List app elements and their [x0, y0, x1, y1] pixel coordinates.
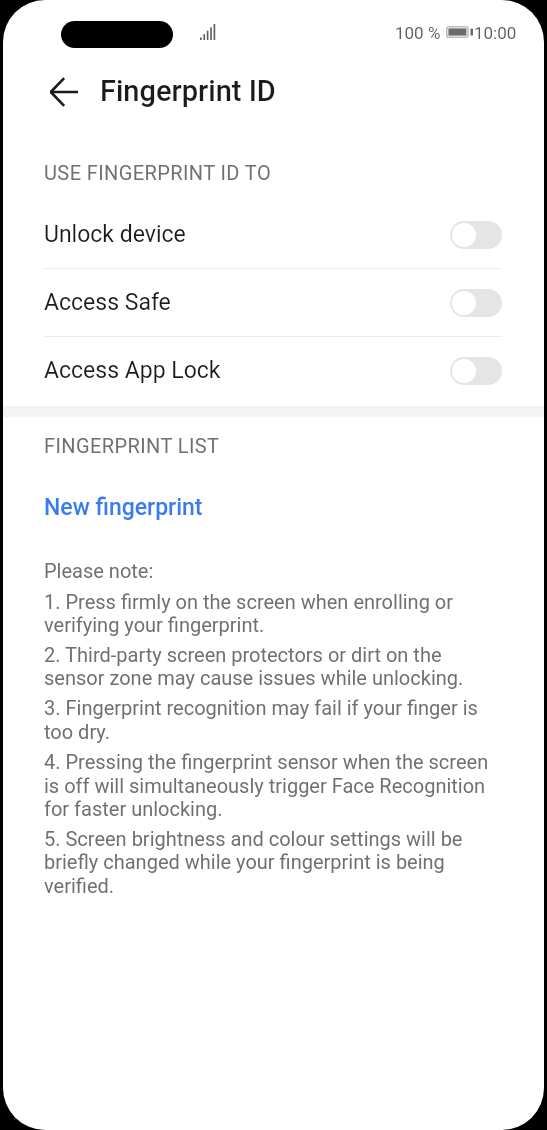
- staticText: 100 %: [395, 23, 441, 43]
- button[interactable]: Access App Lock: [3, 337, 544, 404]
- staticText: Access Safe: [44, 289, 450, 316]
- button[interactable]: Unlock device: [3, 201, 544, 268]
- staticText: verifying your fingerprint.: [44, 613, 265, 636]
- staticText: Please note:: [44, 559, 154, 582]
- staticText: USE FINGERPRINT ID TO: [44, 161, 272, 184]
- staticText: sensor zone may cause issues while unloc…: [44, 666, 464, 689]
- staticText: verified.: [44, 874, 115, 897]
- staticText: 1. Press firmly on the screen when enrol…: [44, 590, 454, 613]
- button[interactable]: Access Safe: [3, 269, 544, 336]
- staticText: 2. Third-party screen protectors or dirt…: [44, 643, 442, 666]
- staticText: New fingerprint: [44, 494, 203, 521]
- staticText: Access App Lock: [44, 357, 450, 384]
- staticText: Unlock device: [44, 221, 450, 248]
- staticText: is off will simultaneously trigger Face …: [44, 774, 486, 797]
- staticText: Fingerprint ID: [100, 74, 276, 108]
- button[interactable]: Back: [35, 63, 92, 120]
- staticText: too dry.: [44, 720, 111, 743]
- staticText: 3. Fingerprint recognition may fail if y…: [44, 696, 478, 719]
- staticText: briefly changed while your fingerprint i…: [44, 850, 445, 873]
- staticText: 5. Screen brightness and colour settings…: [44, 827, 463, 850]
- staticText: 10:00: [474, 23, 517, 43]
- staticText: FINGERPRINT LIST: [44, 434, 220, 457]
- button[interactable]: New fingerprint: [3, 457, 544, 541]
- staticText: for faster unlocking.: [44, 797, 223, 820]
- staticText: 4. Pressing the fingerprint sensor when …: [44, 750, 489, 773]
